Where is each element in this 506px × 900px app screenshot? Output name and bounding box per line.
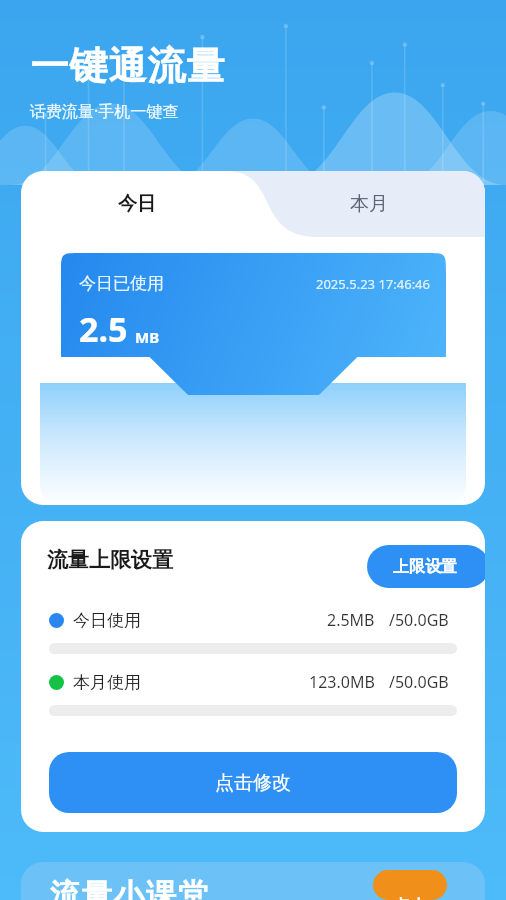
staticText: 流量上限设置 (47, 547, 173, 573)
staticText: 话费流量·手机一键查 (30, 100, 179, 122)
staticText: 今日 (118, 192, 156, 216)
staticText: 上限设置 (393, 557, 457, 577)
staticText: 一键通流量 (30, 42, 225, 90)
button[interactable]: 流量小课堂 (21, 862, 485, 900)
staticText: 2025.5.23 17:46:46 (316, 275, 430, 293)
staticText: MB (135, 327, 160, 347)
staticText: 2.5 (79, 306, 128, 352)
staticText: 本月 (350, 192, 388, 216)
staticText: 本月使用 (73, 672, 141, 693)
staticText: 123.0MB (309, 671, 375, 693)
staticText: 今日使用 (73, 610, 141, 631)
staticText: 今日已使用 (79, 273, 164, 294)
other: 点击查看流量小课堂 (373, 870, 447, 900)
button[interactable]: 上限设置 (367, 545, 485, 588)
staticText: /50.0GB (389, 609, 457, 631)
button[interactable]: 今日 (21, 171, 253, 237)
staticText: /50.0GB (389, 671, 457, 693)
button[interactable]: 点击修改 (49, 752, 457, 813)
staticText: 点击修改 (215, 771, 291, 795)
staticText: 2.5MB (327, 609, 375, 631)
staticText: 点击 (393, 896, 427, 900)
staticText: 流量小课堂 (49, 876, 209, 900)
button[interactable]: 本月 (253, 171, 485, 237)
